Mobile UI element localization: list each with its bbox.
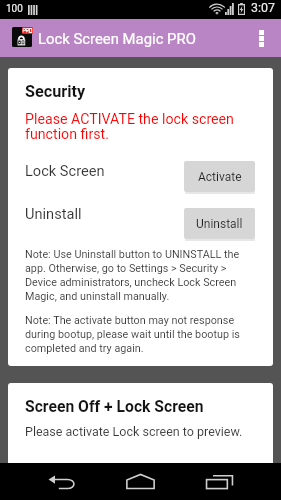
button[interactable]: Recents xyxy=(180,463,259,500)
staticText: Security xyxy=(25,82,86,101)
staticText: Please ACTIVATE the lock screen function… xyxy=(25,111,234,143)
staticText: Lock Screen xyxy=(25,162,105,179)
staticText: Activate xyxy=(198,170,242,184)
staticText: 3:07 xyxy=(251,0,275,15)
staticText: Note: Use Uninstall button to UNINSTALL … xyxy=(25,248,259,302)
button[interactable]: More options xyxy=(242,19,281,57)
button[interactable]: Home xyxy=(101,463,180,500)
staticText: Please activate Lock screen to preview. xyxy=(25,424,243,439)
staticText: Screen Off + Lock Screen xyxy=(25,397,204,415)
button[interactable]: Uninstall xyxy=(184,208,255,241)
staticText: Uninstall xyxy=(25,205,82,222)
button[interactable]: Activate xyxy=(184,161,255,194)
staticText: Lock Screen Magic PRO xyxy=(38,30,196,47)
staticText: Note: The activate button may not respon… xyxy=(25,314,259,354)
staticText: Uninstall xyxy=(196,217,243,231)
staticText: 100 xyxy=(6,3,23,15)
button[interactable]: Back xyxy=(22,463,101,500)
